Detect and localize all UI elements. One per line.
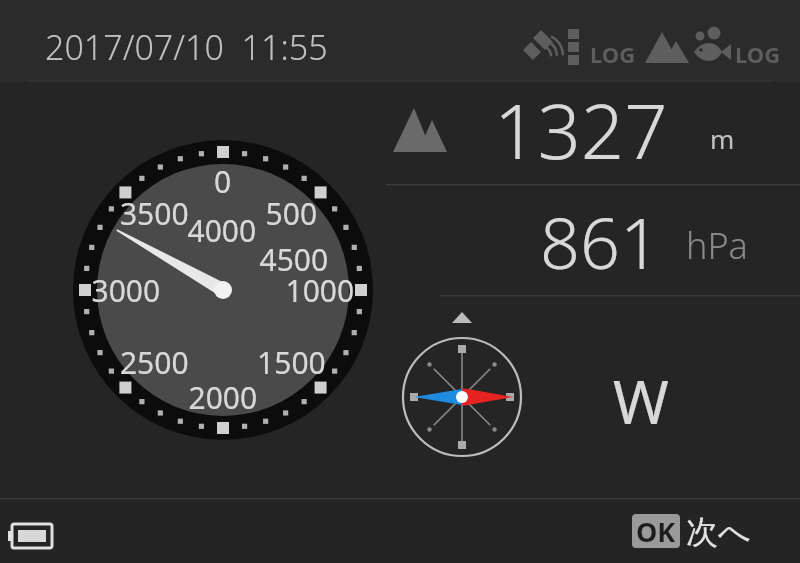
button[interactable]: Next, OK — [0, 498, 800, 563]
button[interactable]: OK, next screen — [650, 513, 800, 563]
button[interactable]: Date, time and sensor status — [0, 0, 800, 82]
